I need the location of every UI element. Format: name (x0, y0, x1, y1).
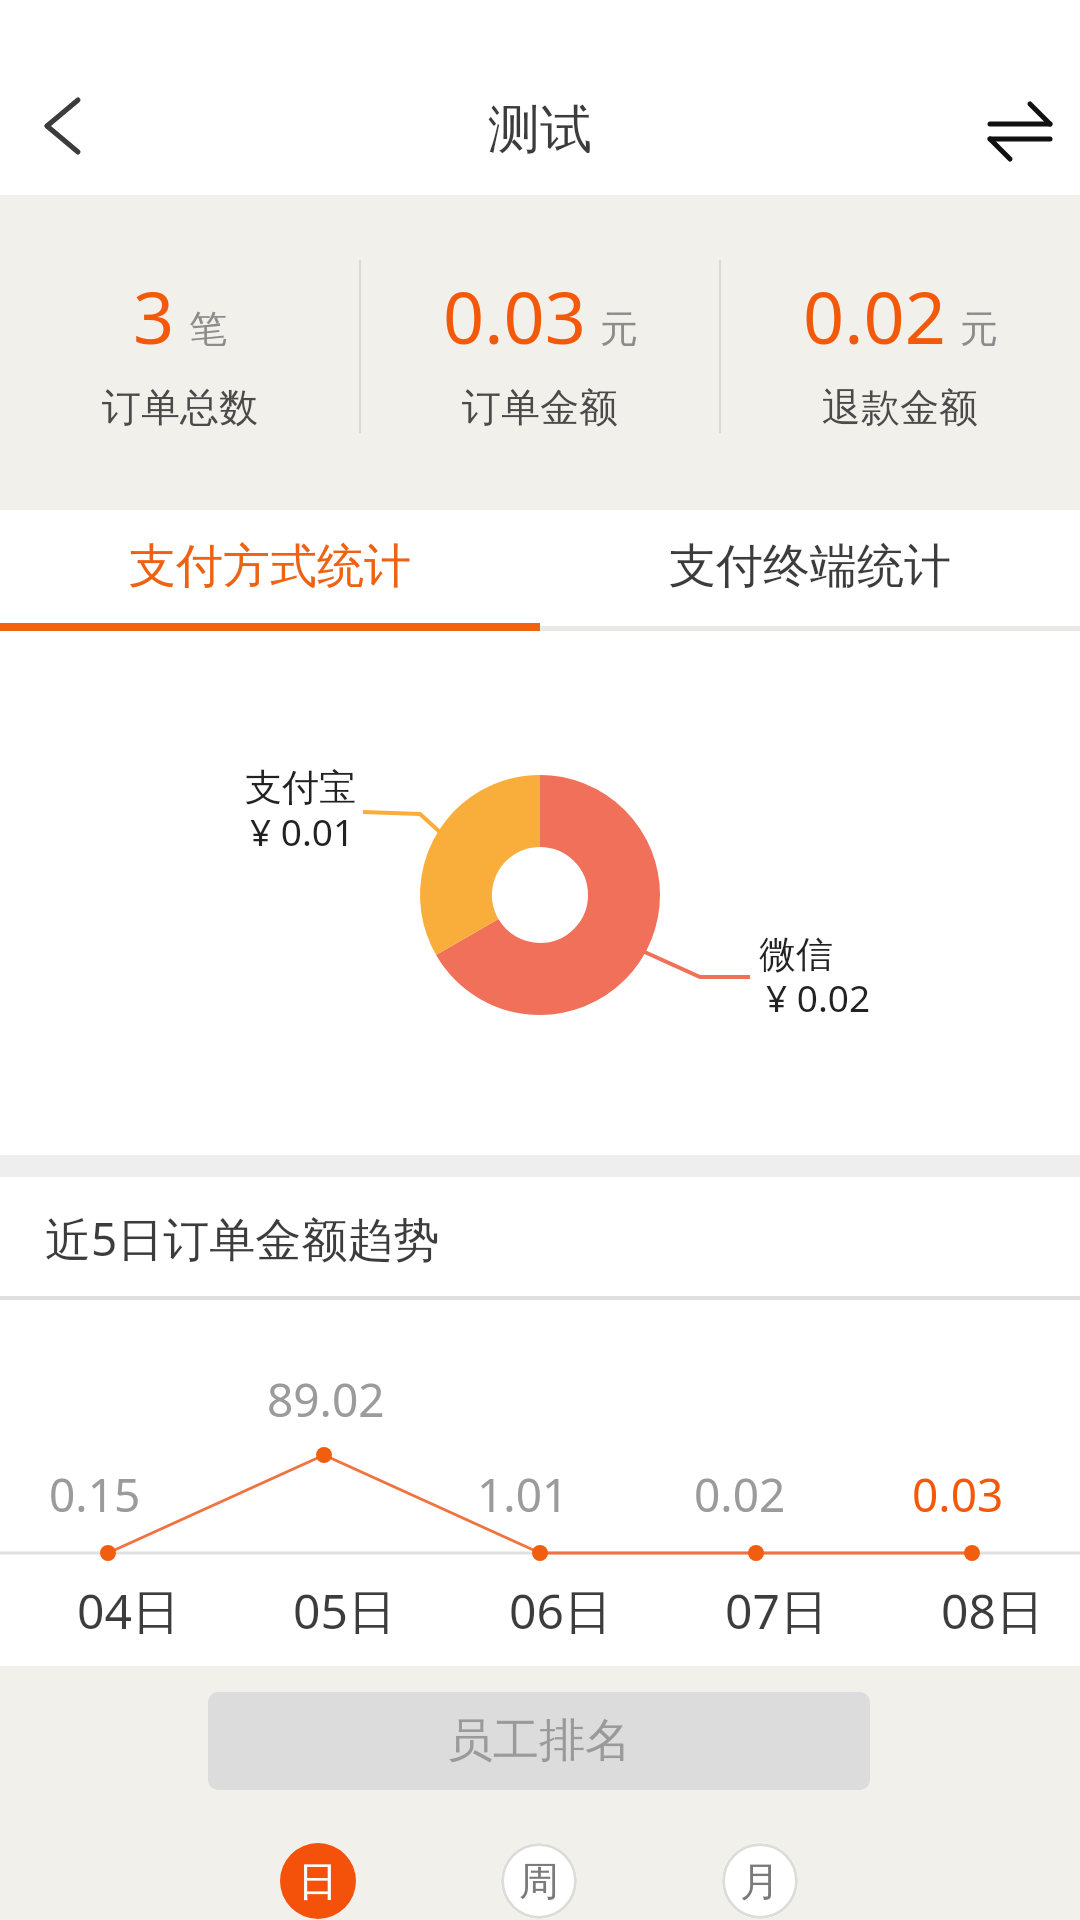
button[interactable]: 日 (280, 1843, 356, 1919)
staticText: 08日 (941, 1578, 1044, 1644)
staticText: 支付终端统计 (669, 537, 951, 596)
staticText: 订单总数 (102, 383, 258, 432)
button[interactable] (950, 0, 1080, 195)
staticText: 笔 (189, 305, 227, 353)
staticText: 0.03 (443, 267, 586, 365)
staticText: 周 (519, 1856, 559, 1906)
staticText: 04日 (77, 1578, 180, 1644)
staticText: 89.02 (267, 1368, 385, 1431)
staticText: 06日 (509, 1578, 612, 1644)
staticText: 月 (740, 1856, 780, 1906)
staticText: ¥ 0.02 (766, 972, 871, 1022)
staticText: 测试 (488, 97, 592, 163)
staticText: ¥ 0.01 (250, 806, 355, 856)
staticText: 元 (600, 305, 638, 353)
staticText: 退款金额 (822, 383, 978, 432)
staticText: 微信 (759, 931, 833, 978)
staticText: 元 (960, 305, 998, 353)
staticText: 0.02 (803, 267, 946, 365)
staticText: 05日 (293, 1578, 396, 1644)
staticText: 近5日订单金额趋势 (45, 1207, 440, 1270)
button[interactable]: 周 (501, 1843, 577, 1919)
button[interactable]: 支付方式统计 (0, 510, 540, 631)
button[interactable]: 员工排名 (208, 1692, 870, 1790)
staticText: 1.01 (477, 1463, 569, 1526)
staticText: 日 (298, 1856, 338, 1906)
staticText: 支付方式统计 (129, 537, 411, 596)
button[interactable]: 月 (722, 1843, 798, 1919)
staticText: 0.03 (912, 1463, 1004, 1526)
staticText: 3 (133, 267, 175, 365)
staticText: 员工排名 (447, 1712, 631, 1770)
button[interactable]: 支付终端统计 (540, 510, 1080, 631)
staticText: 0.02 (694, 1463, 786, 1526)
staticText: 支付宝 (245, 764, 356, 811)
staticText: 订单金额 (462, 383, 618, 432)
staticText: 07日 (725, 1578, 828, 1644)
staticText: 0.15 (49, 1463, 141, 1526)
button[interactable] (0, 0, 120, 195)
